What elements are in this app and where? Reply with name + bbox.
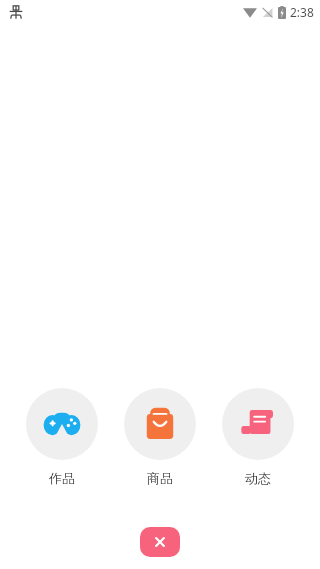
staticText: 作品 (26, 470, 98, 486)
button[interactable]: 商品 (124, 388, 196, 486)
staticText: 商品 (124, 470, 196, 486)
button[interactable]: 作品 (26, 388, 98, 486)
staticText: 2:38 (290, 4, 314, 20)
button[interactable]: 关闭 (140, 527, 180, 557)
staticText: 动态 (222, 470, 294, 486)
button[interactable]: 动态 (222, 388, 294, 486)
